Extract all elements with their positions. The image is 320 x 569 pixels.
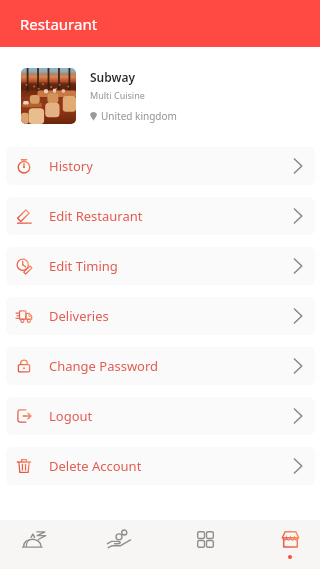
staticText: Logout (49, 407, 93, 425)
staticText: Edit Timing (49, 257, 118, 275)
button[interactable]: Edit Restaurant (6, 197, 315, 235)
button[interactable]: Menu (185, 520, 225, 569)
button[interactable]: Delete Account (6, 447, 315, 485)
button[interactable]: Edit Timing (6, 247, 315, 285)
button[interactable]: Orders (14, 520, 54, 569)
staticText: Restaurant (20, 14, 98, 34)
staticText: United kingdom (101, 109, 177, 123)
staticText: Multi Cuisine (90, 89, 145, 101)
button[interactable]: Earnings (99, 520, 139, 569)
button[interactable]: Logout (6, 397, 315, 435)
staticText: Delete Account (49, 457, 142, 475)
staticText: Deliveries (49, 307, 109, 325)
button[interactable]: History (6, 147, 315, 185)
staticText: Edit Restaurant (49, 207, 143, 225)
button[interactable]: Change Password (6, 347, 315, 385)
staticText: Change Password (49, 357, 159, 375)
staticText: History (49, 157, 93, 175)
staticText: Subway (90, 69, 136, 85)
button[interactable]: Restaurant (270, 520, 310, 569)
button[interactable]: Deliveries (6, 297, 315, 335)
